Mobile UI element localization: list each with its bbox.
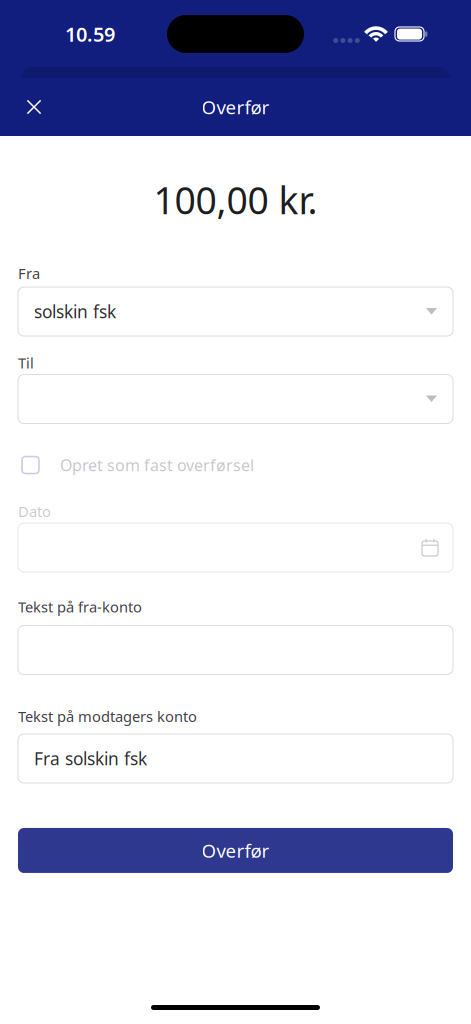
button[interactable] bbox=[18, 374, 453, 423]
button[interactable]: Overfør bbox=[18, 828, 453, 873]
staticText: Fra solskin fsk bbox=[34, 747, 147, 770]
staticText: Tekst på fra-konto bbox=[18, 597, 142, 616]
staticText: Tekst på modtagers konto bbox=[18, 706, 197, 726]
staticText: Til bbox=[18, 353, 34, 373]
staticText: 100,00 kr. bbox=[153, 175, 317, 225]
staticText: Overfør bbox=[201, 95, 269, 119]
button[interactable]: Luk bbox=[12, 85, 56, 129]
staticText: solskin fsk bbox=[34, 300, 116, 323]
button[interactable]: solskin fsk bbox=[18, 287, 453, 336]
staticText: Dato bbox=[18, 501, 51, 521]
staticText: 10.59 bbox=[65, 21, 115, 47]
button[interactable]: Opret som fast overførsel bbox=[18, 449, 453, 481]
staticText: Fra bbox=[18, 264, 40, 283]
staticText: Opret som fast overførsel bbox=[60, 454, 254, 476]
staticText: Overfør bbox=[201, 838, 269, 863]
